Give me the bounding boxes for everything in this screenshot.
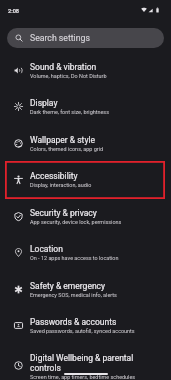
staticText: Sound & vibration <box>30 62 97 72</box>
staticText: Display, interaction, audio <box>30 182 92 188</box>
staticText: Volume, haptics, Do Not Disturb <box>30 73 107 79</box>
staticText: Accessibility <box>30 171 78 181</box>
staticText: Location <box>30 244 63 254</box>
staticText: Screen time, app timers, bedtime schedul… <box>30 374 136 380</box>
staticText: Emergency SOS, medical info, alerts <box>30 292 117 298</box>
button[interactable]: Search settings <box>7 28 164 48</box>
staticText: Passwords & accounts <box>30 317 117 327</box>
staticText: Digital Wellbeing & parental controls <box>30 353 141 373</box>
staticText: Safety & emergency <box>30 281 106 291</box>
staticText: Display <box>30 98 58 108</box>
button[interactable]: Wallpaper & style <box>0 125 171 161</box>
staticText: Search settings <box>30 33 90 43</box>
staticText: App security, device lock, permissions <box>30 219 122 225</box>
staticText: 2:08 <box>8 8 20 15</box>
staticText: Colors, themed icons, app grid <box>30 146 104 152</box>
button[interactable]: Location <box>0 234 171 270</box>
staticText: Security & privacy <box>30 208 97 218</box>
staticText: Wallpaper & style <box>30 135 95 145</box>
button[interactable]: Display <box>0 88 171 124</box>
staticText: Saved passwords, autofill, synced accoun… <box>30 328 135 334</box>
staticText: On - 12 apps have access to location <box>30 255 119 261</box>
button[interactable]: Security & privacy <box>0 198 171 234</box>
button[interactable]: Sound & vibration <box>0 52 171 88</box>
staticText: Dark theme, font size, brightness <box>30 109 109 115</box>
button[interactable]: Passwords & accounts <box>0 307 171 343</box>
button[interactable]: Accessibility <box>0 161 171 197</box>
button[interactable]: Safety & emergency <box>0 271 171 307</box>
button[interactable]: Digital Wellbeing & parental controls <box>0 344 171 380</box>
